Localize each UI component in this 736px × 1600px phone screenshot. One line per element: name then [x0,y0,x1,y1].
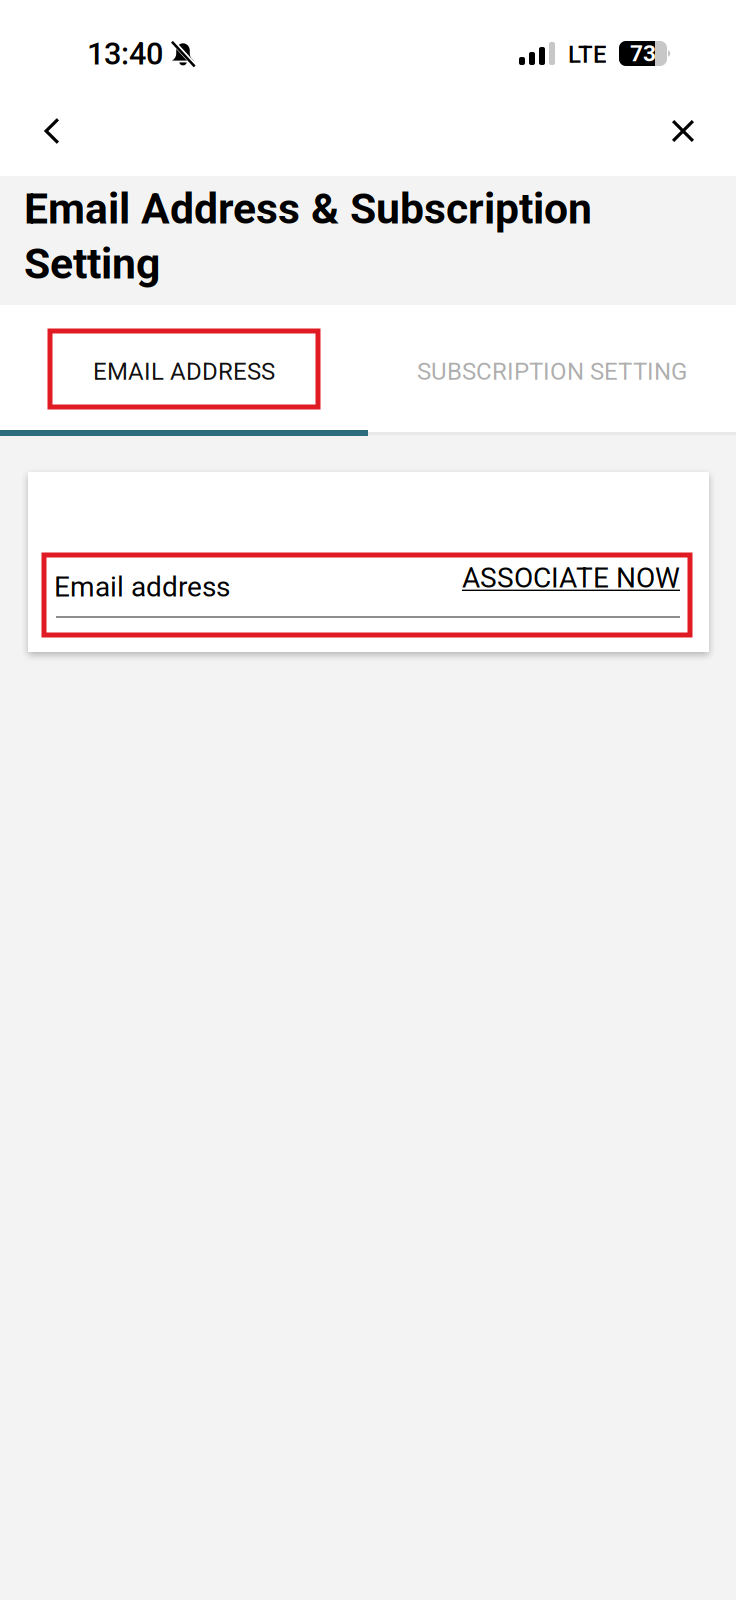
staticText: ASSOCIATE NOW [462,562,680,594]
staticText: 73 [630,40,656,67]
staticText: Email Address & Subscription [24,184,592,234]
staticText: Setting [24,239,160,289]
staticText: SUBSCRIPTION SETTING [417,357,687,385]
button[interactable]: EMAIL ADDRESS [0,308,368,435]
button[interactable]: ASSOCIATE NOW [448,558,680,598]
staticText: EMAIL ADDRESS [93,357,275,385]
staticText: Email address [54,571,230,603]
button[interactable]: Close [645,95,721,167]
button[interactable]: SUBSCRIPTION SETTING [368,308,736,435]
staticText: LTE [568,40,607,68]
staticText: 13:40 [87,36,163,72]
button[interactable]: Back [14,95,90,167]
